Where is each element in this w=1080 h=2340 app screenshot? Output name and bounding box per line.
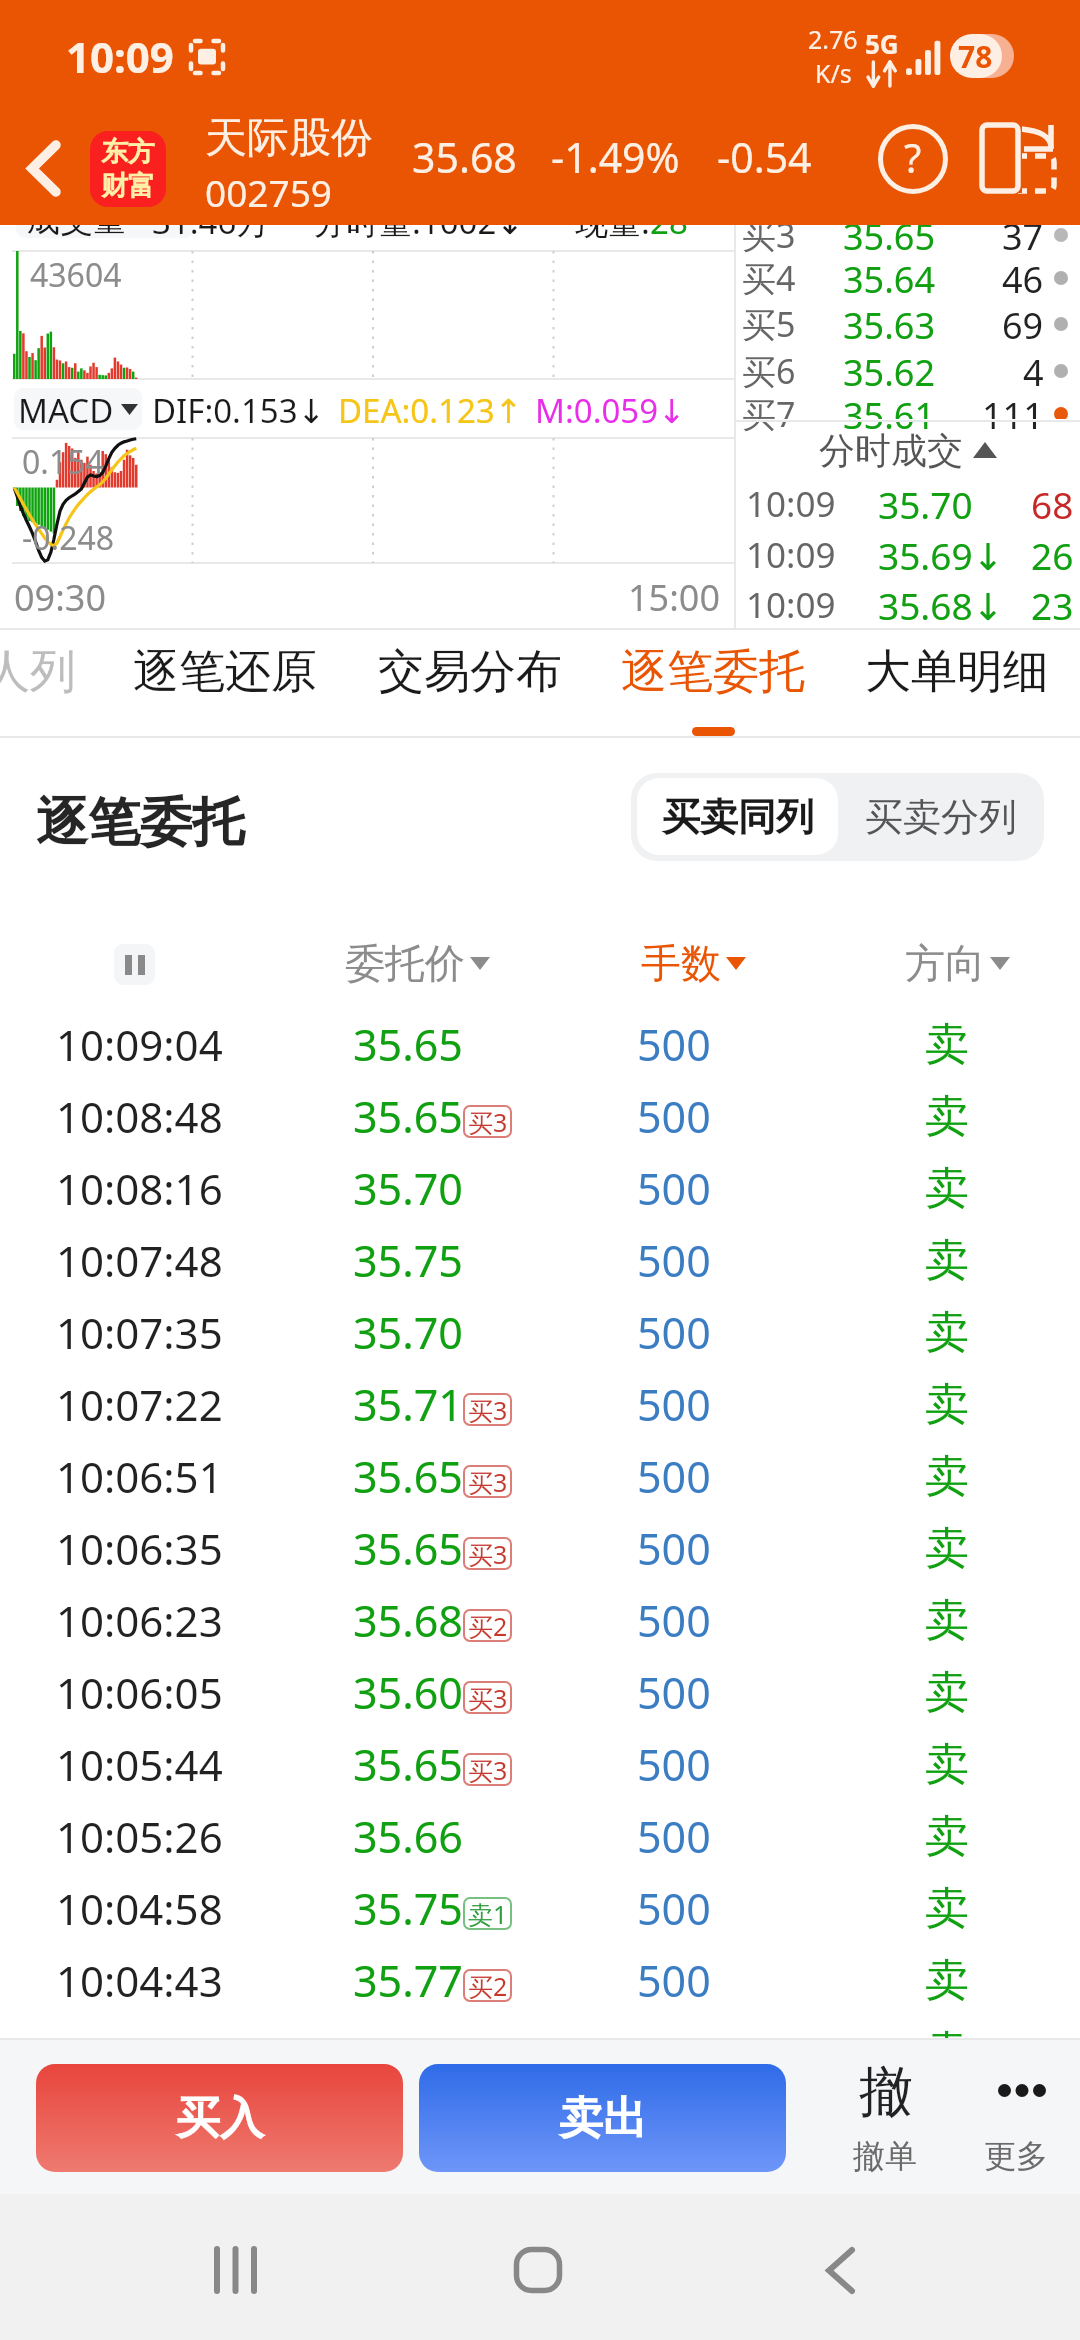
staticText: 买3 — [468, 1753, 508, 1786]
button[interactable]: 撤 — [815, 2038, 955, 2194]
button[interactable]: 10:08:48 — [0, 1080, 1080, 1152]
staticText: 更多 — [984, 2136, 1048, 2176]
button[interactable]: Pause — [114, 944, 155, 985]
staticText: 方向 — [905, 938, 985, 988]
staticText: 78 — [958, 36, 993, 77]
staticText: 10:08:16 — [56, 1160, 223, 1217]
staticText: K/s — [815, 56, 852, 90]
button[interactable]: 委托价 — [327, 916, 507, 1010]
button[interactable]: 10:06:23 — [0, 1584, 1080, 1656]
staticText: 10:07:48 — [56, 1232, 223, 1289]
button[interactable]: More — [948, 2038, 1080, 2194]
button[interactable]: Back — [0, 112, 88, 225]
staticText: 卖 — [925, 1161, 969, 1216]
staticText: 35.70 — [878, 479, 973, 529]
button[interactable]: 买卖同列 — [637, 778, 838, 855]
staticText: 10:04:43 — [56, 1952, 223, 2009]
button[interactable]: 大单明细 — [865, 630, 1049, 738]
button[interactable]: 10:05:44 — [0, 1728, 1080, 1800]
staticText: 500 — [637, 1519, 711, 1578]
button[interactable]: 买7 — [736, 391, 1080, 437]
staticText: 天际股份 — [205, 112, 373, 165]
button[interactable]: 10:04:58 — [0, 1872, 1080, 1944]
button[interactable]: 10:09:04 — [0, 1008, 1080, 1080]
staticText: 2.76 — [808, 22, 858, 56]
staticText: 委托价 — [345, 938, 465, 988]
button[interactable]: 10:04:20 — [0, 2016, 1080, 2040]
button[interactable]: 10:09 — [736, 530, 1080, 580]
staticText: 35.68↓ — [878, 580, 1004, 630]
staticText: -1.49% — [551, 129, 680, 185]
staticText: 35.71 — [353, 1375, 463, 1434]
staticText: 10:06:23 — [56, 1592, 223, 1649]
staticText: 35.65 — [353, 1087, 463, 1146]
button[interactable]: 10:09 — [736, 479, 1080, 529]
staticText: 卖 — [925, 2025, 969, 2040]
button[interactable]: 人列 — [0, 630, 80, 738]
staticText: 卖 — [925, 1953, 969, 2008]
button[interactable]: 卖出 — [419, 2064, 786, 2172]
staticText: 10:05:44 — [56, 1736, 223, 1793]
staticText: 35.68 — [353, 1591, 463, 1650]
button[interactable]: 买3 — [736, 225, 1080, 258]
staticText: 10:09 — [746, 480, 836, 528]
button[interactable]: 10:08:16 — [0, 1152, 1080, 1224]
staticText: ? — [904, 130, 922, 184]
button[interactable]: 10:04:43 — [0, 1944, 1080, 2016]
staticText: 500 — [637, 1231, 711, 1290]
button[interactable]: 10:09 — [736, 580, 1080, 630]
staticText: 人列 — [0, 643, 76, 701]
staticText: 大单明细 — [865, 643, 1049, 701]
staticText: 买卖分列 — [865, 793, 1017, 841]
button[interactable]: Back — [780, 2194, 900, 2340]
button[interactable]: 10:07:48 — [0, 1224, 1080, 1296]
staticText: 买4 — [742, 255, 796, 301]
button[interactable]: 10:07:35 — [0, 1296, 1080, 1368]
staticText: 买3 — [742, 225, 796, 258]
staticText: 500 — [637, 1591, 711, 1650]
staticText: 500 — [637, 2023, 711, 2040]
staticText: 卖出 — [559, 2091, 647, 2146]
staticText: 35.65 — [353, 1015, 463, 1074]
staticText: 111 — [982, 391, 1044, 437]
button[interactable]: 方向 — [867, 916, 1047, 1010]
staticText: 买2 — [468, 1969, 508, 2002]
button[interactable]: 手数 — [603, 916, 783, 1010]
button[interactable]: 买5 — [736, 301, 1080, 347]
button[interactable]: 买卖分列 — [838, 773, 1044, 861]
button[interactable]: Rotate screen — [960, 112, 1080, 225]
button[interactable]: 逐笔委托 — [621, 630, 805, 738]
button[interactable]: 10:06:51 — [0, 1440, 1080, 1512]
button[interactable]: 买4 — [736, 255, 1080, 301]
staticText: 10:08:48 — [56, 1088, 223, 1145]
button[interactable]: 10:06:35 — [0, 1512, 1080, 1584]
button[interactable]: 10:07:22 — [0, 1368, 1080, 1440]
staticText: 46 — [1002, 255, 1044, 301]
button[interactable]: 买入 — [36, 2064, 403, 2172]
button[interactable]: Home — [478, 2194, 598, 2340]
staticText: 35.69↓ — [878, 530, 1004, 580]
staticText: 500 — [637, 1375, 711, 1434]
staticText: 500 — [637, 1303, 711, 1362]
button[interactable]: East Money — [90, 131, 166, 207]
button[interactable]: 交易分布 — [378, 630, 562, 738]
staticText: M:0.059↓ — [535, 388, 686, 430]
staticText: 逐笔委托 — [36, 790, 244, 856]
button[interactable]: 10:06:05 — [0, 1656, 1080, 1728]
staticText: 26 — [1031, 530, 1074, 580]
staticText: 10:04:58 — [56, 1880, 223, 1937]
button[interactable]: MACD — [14, 388, 142, 430]
staticText: -0.248 — [22, 516, 115, 560]
button[interactable]: 逐笔还原 — [133, 630, 317, 738]
staticText: 35.60 — [353, 1663, 463, 1722]
button[interactable]: 买6 — [736, 348, 1080, 394]
button[interactable]: Help — [858, 112, 968, 225]
staticText: 09:30 — [14, 573, 107, 622]
button[interactable]: Recent apps — [175, 2194, 295, 2340]
button[interactable]: 10:05:26 — [0, 1800, 1080, 1872]
staticText: 35.68 — [412, 129, 517, 185]
staticText: 卖 — [925, 1737, 969, 1792]
button[interactable]: 分时成交 — [736, 425, 1080, 475]
staticText: 500 — [637, 1663, 711, 1722]
staticText: 0.154 — [22, 440, 104, 484]
